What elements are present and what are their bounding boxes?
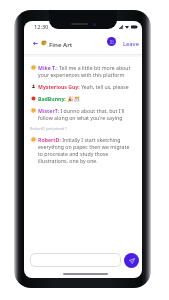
- button[interactable]: BadBunny: 🎉🎊: [30, 95, 133, 102]
- button[interactable]: Mike T.: Tell me a little bit more about…: [30, 64, 133, 78]
- staticText: 12:30: [34, 23, 49, 31]
- button[interactable]: Leave: [122, 38, 140, 50]
- staticText: RobertD: Initially I start sketching eve…: [38, 136, 133, 164]
- staticText: RobertD just joined !: [30, 126, 67, 131]
- staticText: MisterT: I dunno about that, but I'll fo…: [38, 107, 133, 121]
- button[interactable]: RobertD: Initially I start sketching eve…: [30, 136, 133, 164]
- staticText: Mysterious Guy: Yeah, tell us, please: [38, 83, 129, 90]
- staticText: Fine Art: [49, 40, 73, 48]
- button[interactable]: MisterT: I dunno about that, but I'll fo…: [30, 107, 133, 121]
- button[interactable]: Members: [107, 37, 116, 46]
- button[interactable]: Send: [124, 253, 139, 268]
- staticText: Mike T.: Tell me a little bit more about…: [38, 64, 133, 78]
- button[interactable]: Back: [31, 38, 39, 48]
- button[interactable]: Mysterious Guy: Yeah, tell us, please: [30, 83, 133, 90]
- staticText: BadBunny: 🎉🎊: [38, 95, 81, 102]
- button[interactable]: [30, 253, 121, 267]
- staticText: Leave: [123, 40, 139, 48]
